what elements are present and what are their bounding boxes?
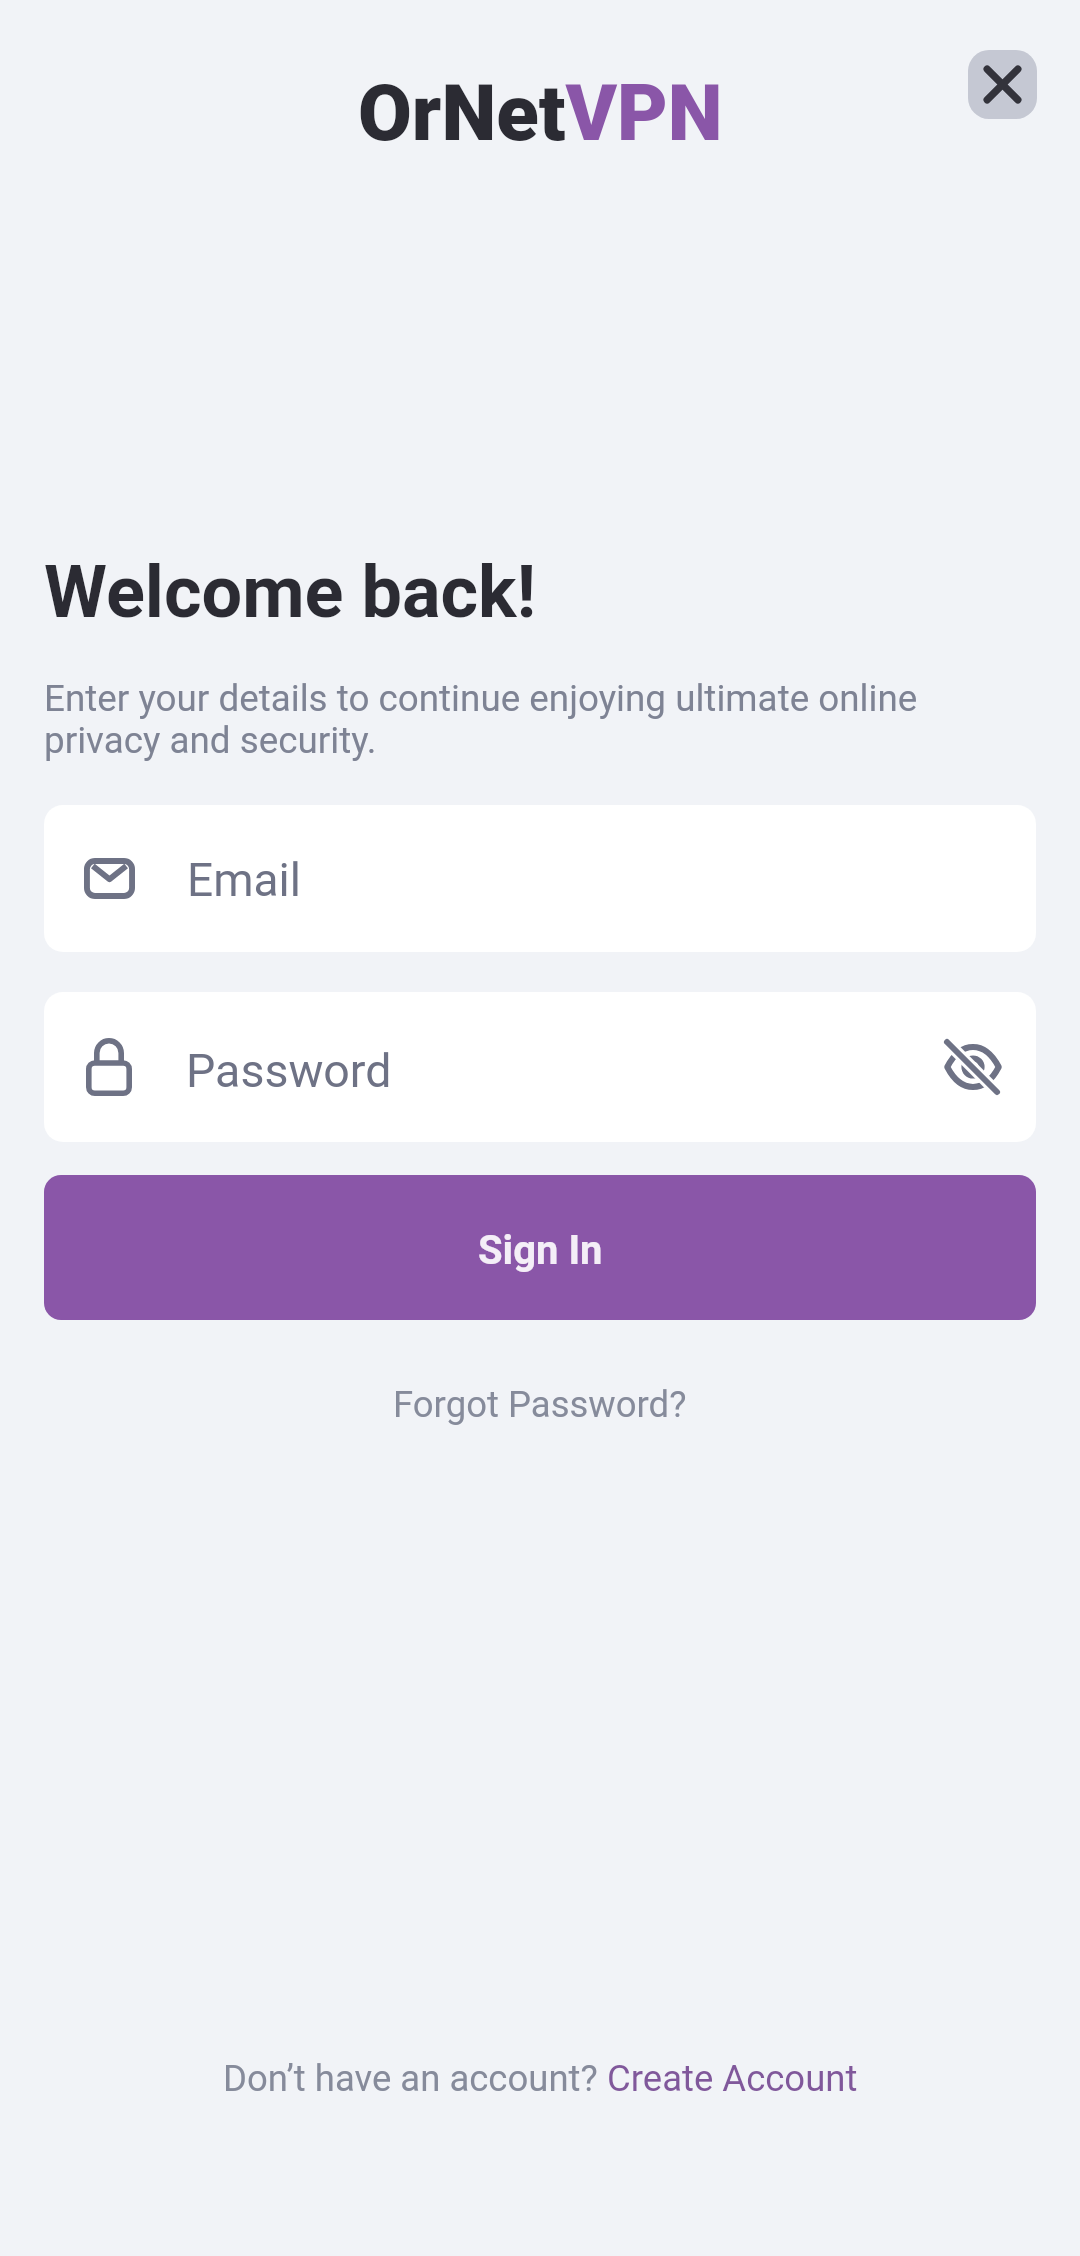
staticText: Sign In	[478, 1227, 603, 1274]
staticText: Don’t have an account?	[223, 2057, 607, 2100]
staticText: Password	[186, 1044, 392, 1098]
button[interactable]: Sign In	[44, 1175, 1036, 1320]
staticText: Create Account	[607, 2057, 858, 2100]
button[interactable]: Forgot Password?	[379, 1375, 701, 1434]
button[interactable]: Create Account	[607, 2057, 858, 2100]
button[interactable]: Show password	[940, 1034, 1006, 1100]
button[interactable]: Password	[44, 992, 1036, 1142]
staticText: Forgot Password?	[393, 1383, 687, 1426]
staticText: Email	[187, 853, 301, 907]
button[interactable]: Close	[968, 50, 1037, 119]
staticText: OrNetVPN	[358, 68, 723, 159]
staticText: Enter your details to continue enjoying …	[44, 677, 918, 762]
staticText: Welcome back!	[44, 550, 537, 634]
button[interactable]: Email	[44, 805, 1036, 952]
